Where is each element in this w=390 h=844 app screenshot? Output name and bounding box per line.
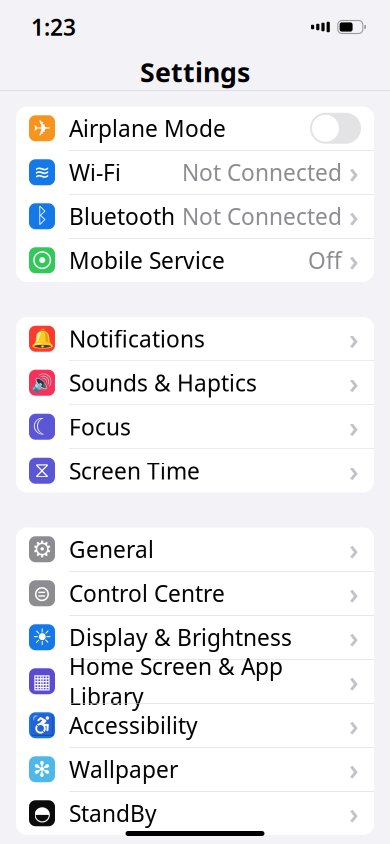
staticText: Sounds & Haptics — [69, 368, 257, 398]
staticText: › — [349, 619, 359, 656]
button[interactable]: ⦿ — [16, 238, 374, 282]
staticText: ⊜ — [33, 581, 51, 605]
staticText: ≋ — [33, 161, 50, 184]
button[interactable]: ▦ — [16, 659, 374, 703]
staticText: ▦ — [32, 670, 51, 693]
staticText: › — [349, 198, 359, 235]
staticText: › — [349, 531, 359, 568]
staticText: Bluetooth — [69, 201, 175, 231]
button[interactable]: ≋ — [16, 150, 374, 194]
button[interactable]: ◓ — [16, 791, 374, 835]
staticText: › — [349, 575, 359, 612]
button[interactable]: ☀ — [16, 615, 374, 659]
staticText: 🔊 — [31, 373, 53, 393]
staticText: Off — [308, 245, 342, 275]
staticText: Not Connected — [182, 157, 342, 187]
staticText: › — [349, 795, 359, 832]
staticText: Settings — [140, 54, 250, 90]
staticText: ᛒ — [35, 206, 48, 227]
staticText: 1:23 — [31, 12, 76, 42]
button[interactable]: ✻ — [16, 747, 374, 791]
staticText: ♿ — [29, 714, 54, 737]
staticText: › — [349, 242, 359, 279]
staticText: Control Centre — [69, 578, 225, 608]
staticText: Wallpaper — [69, 754, 178, 784]
staticText: › — [349, 320, 359, 357]
staticText: › — [349, 707, 359, 744]
staticText: Focus — [69, 412, 131, 442]
button[interactable]: ♿ — [16, 703, 374, 747]
button[interactable]: ⊜ — [16, 571, 374, 615]
staticText: 🔔 — [30, 328, 53, 349]
staticText: Wi-Fi — [69, 157, 121, 187]
staticText: › — [349, 663, 359, 700]
staticText: Display & Brightness — [69, 622, 292, 652]
staticText: › — [349, 452, 359, 489]
button[interactable]: ⧖ — [16, 449, 374, 492]
staticText: ⚙ — [32, 536, 52, 562]
staticText: StandBy — [69, 798, 157, 828]
staticText: General — [69, 534, 154, 564]
button[interactable]: ✈ — [16, 106, 374, 150]
staticText: Not Connected — [182, 201, 342, 231]
staticText: ✈ — [33, 116, 51, 140]
staticText: ✻ — [33, 757, 51, 781]
staticText: ⧖ — [34, 460, 49, 481]
staticText: › — [349, 364, 359, 401]
staticText: ☾ — [32, 414, 52, 440]
button[interactable]: ⚙ — [16, 527, 374, 571]
staticText: ⦿ — [31, 250, 52, 271]
staticText: Screen Time — [69, 456, 200, 486]
button[interactable]: ☾ — [16, 405, 374, 448]
staticText: › — [349, 751, 359, 788]
staticText: Mobile Service — [69, 245, 225, 275]
button[interactable]: ᛒ — [16, 194, 374, 238]
staticText: Home Screen & App Library — [69, 651, 283, 711]
staticText: › — [349, 408, 359, 445]
staticText: ◓ — [33, 802, 50, 825]
button[interactable]: 🔊 — [16, 361, 374, 404]
staticText: › — [349, 154, 359, 191]
staticText: Airplane Mode — [69, 113, 226, 143]
staticText: Notifications — [69, 324, 205, 354]
staticText: ☀ — [32, 624, 52, 650]
staticText: Accessibility — [69, 710, 198, 740]
button[interactable]: 🔔 — [16, 317, 374, 360]
